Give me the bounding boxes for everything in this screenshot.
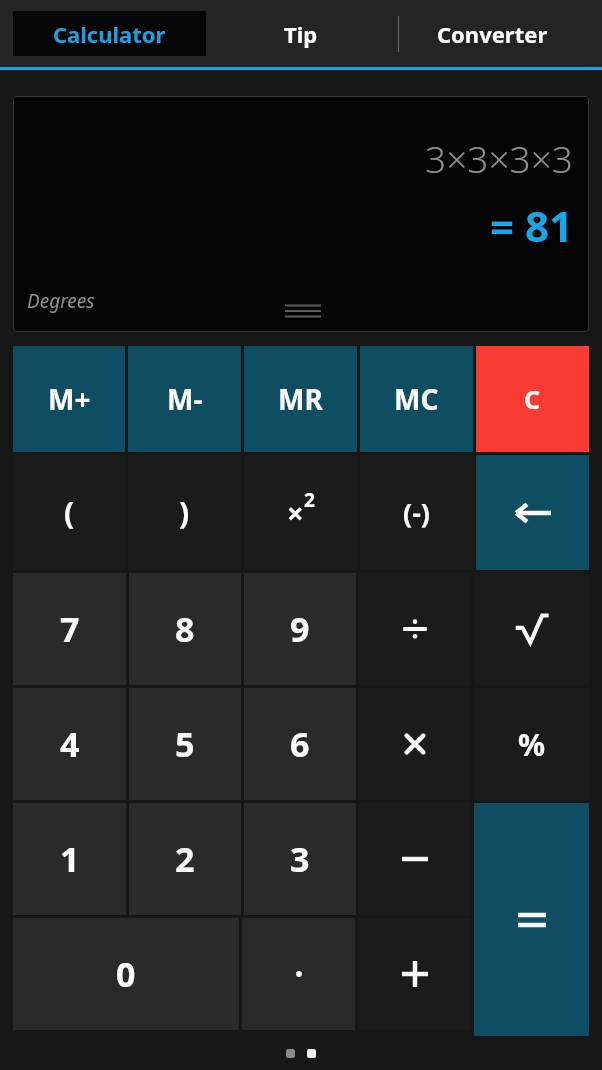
staticText: Tip <box>284 19 318 49</box>
button[interactable]: 5 <box>129 688 241 800</box>
button[interactable]: 3×3×3×3 <box>13 96 589 332</box>
button[interactable]: ( <box>13 455 125 570</box>
staticText: MC <box>394 380 439 418</box>
staticText: Calculator <box>53 19 166 49</box>
button[interactable]: 4 <box>13 688 126 800</box>
staticText: (-) <box>403 494 430 531</box>
staticText: 5 <box>175 721 195 767</box>
staticText: M+ <box>48 380 91 418</box>
button[interactable]: Minus <box>359 803 471 915</box>
staticText: 2 <box>175 836 195 882</box>
button[interactable]: Multiply <box>359 688 471 800</box>
staticText: 8 <box>175 606 195 652</box>
staticText: C <box>524 382 541 416</box>
button[interactable]: M- <box>128 346 241 452</box>
button[interactable]: Plus <box>358 918 471 1030</box>
staticText: = 81 <box>13 197 573 254</box>
staticText: 3×3×3×3 <box>13 133 573 183</box>
button[interactable]: 7 <box>13 573 126 685</box>
button[interactable]: Equals <box>474 803 589 1036</box>
staticText: Degrees <box>27 288 95 314</box>
button[interactable]: ) <box>128 455 241 570</box>
button[interactable]: MC <box>360 346 473 452</box>
button[interactable]: 6 <box>244 688 356 800</box>
button[interactable]: 9 <box>244 573 356 685</box>
button[interactable]: Backspace <box>476 455 589 570</box>
button[interactable]: Square root <box>474 573 589 685</box>
staticText: M- <box>167 380 203 418</box>
button[interactable]: 2 <box>129 803 241 915</box>
staticText: 7 <box>60 606 80 652</box>
staticText: 2 <box>304 487 315 513</box>
button[interactable]: Divide <box>359 573 471 685</box>
button[interactable]: 3 <box>244 803 356 915</box>
button[interactable]: Drag handle <box>285 303 321 319</box>
button[interactable]: 1 <box>13 803 126 915</box>
staticText: ( <box>64 492 75 533</box>
staticText: % <box>518 724 546 765</box>
button[interactable]: % <box>474 688 589 800</box>
button[interactable]: M+ <box>13 346 125 452</box>
staticText: 4 <box>60 721 80 767</box>
button[interactable]: Converter <box>383 0 602 67</box>
staticText: MR <box>278 380 323 418</box>
button[interactable]: MR <box>244 346 357 452</box>
staticText: 3 <box>290 836 310 882</box>
staticText: Converter <box>437 19 548 49</box>
button[interactable]: Tip <box>206 0 396 67</box>
staticText: ) <box>179 492 190 533</box>
button[interactable]: (-) <box>360 455 473 570</box>
button[interactable]: Decimal point <box>242 918 355 1030</box>
button[interactable]: 0 <box>13 918 239 1030</box>
button[interactable]: Square <box>244 455 357 570</box>
staticText: 1 <box>60 836 80 882</box>
staticText: 6 <box>290 721 310 767</box>
staticText: × <box>287 493 304 532</box>
staticText: 0 <box>116 951 136 997</box>
button[interactable]: Calculator <box>13 11 206 56</box>
button[interactable]: C <box>476 346 589 452</box>
staticText: 9 <box>290 606 310 652</box>
button[interactable]: 8 <box>129 573 241 685</box>
